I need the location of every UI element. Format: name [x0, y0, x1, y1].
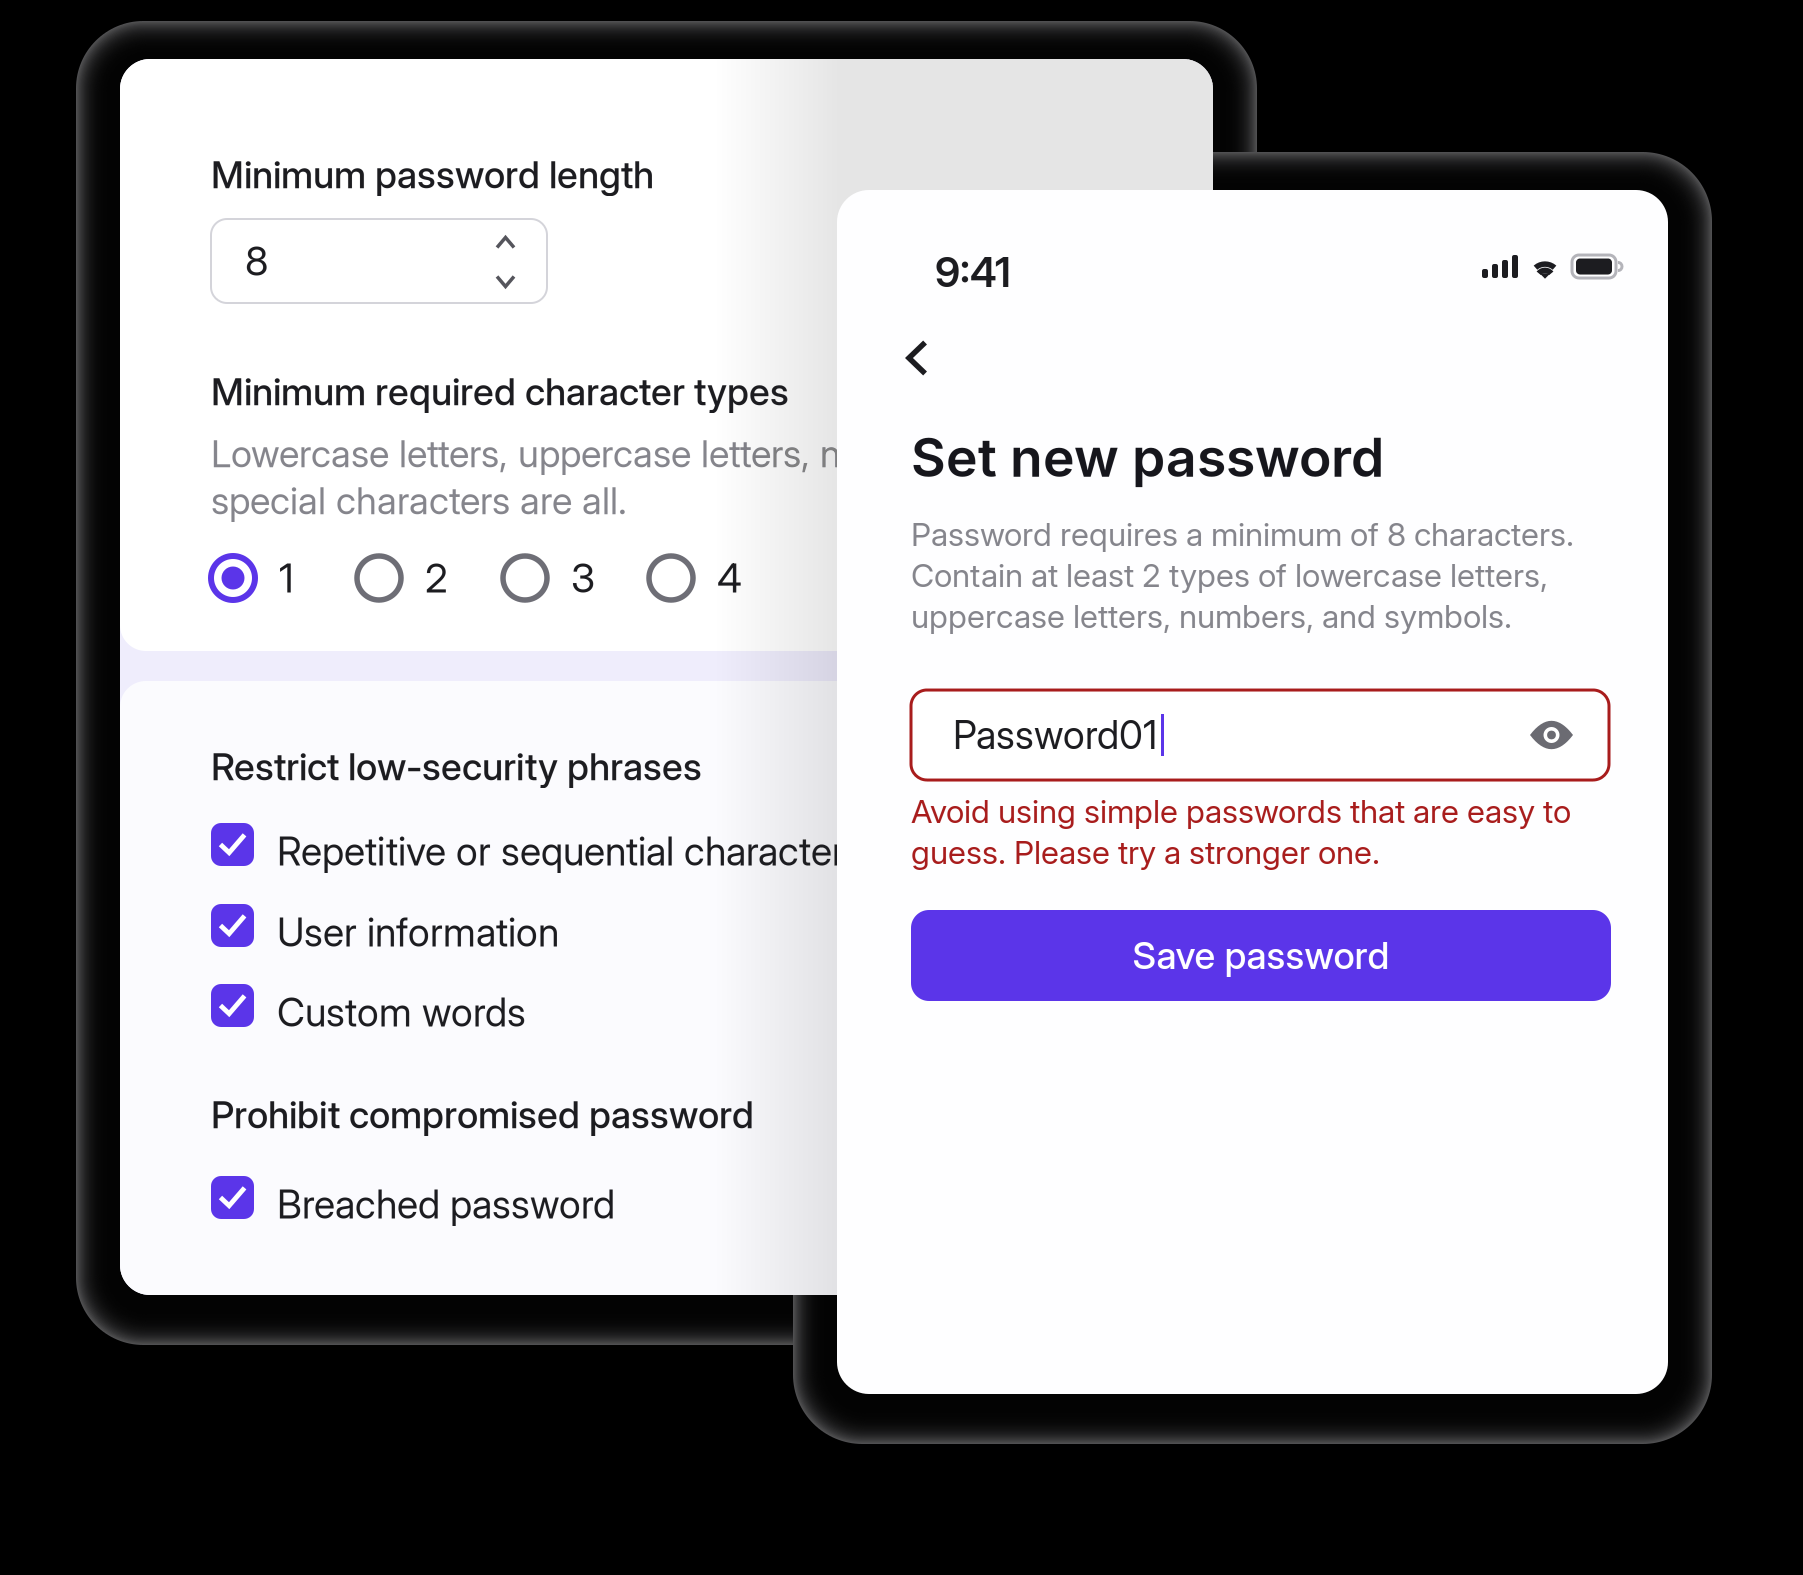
- button[interactable]: Increase minimum password length: [486, 223, 525, 262]
- staticText: Repetitive or sequential characters: [277, 828, 864, 875]
- staticText: uppercase letters, numbers, and symbols.: [911, 597, 1512, 636]
- staticText: 1: [279, 554, 294, 602]
- staticText: special characters are all.: [211, 478, 627, 523]
- button[interactable]: Show password: [1530, 722, 1609, 748]
- staticText: guess. Please try a stronger one.: [911, 833, 1380, 872]
- button[interactable]: Custom words: [211, 984, 526, 1028]
- staticText: Prohibit compromised password: [211, 1092, 754, 1137]
- staticText: 4: [717, 554, 742, 602]
- staticText: Contain at least 2 types of lowercase le…: [911, 556, 1548, 595]
- button[interactable]: 1: [211, 556, 357, 600]
- staticText: Breached password: [277, 1181, 615, 1228]
- button[interactable]: Save password: [911, 910, 1611, 1001]
- button[interactable]: Back: [877, 318, 957, 398]
- staticText: 3: [571, 554, 595, 602]
- button[interactable]: 2: [357, 556, 503, 600]
- staticText: 9:41: [935, 247, 1011, 297]
- staticText: Minimum password length: [211, 152, 654, 197]
- staticText: Minimum required character types: [211, 369, 789, 414]
- staticText: Password01: [953, 712, 1157, 758]
- staticText: Password requires a minimum of 8 charact…: [911, 515, 1574, 554]
- staticText: Set new password: [911, 425, 1384, 489]
- staticText: Custom words: [277, 989, 526, 1036]
- staticText: User information: [277, 909, 559, 956]
- button[interactable]: Repetitive or sequential characters: [211, 823, 864, 867]
- button[interactable]: Decrease minimum password length: [486, 262, 525, 301]
- button[interactable]: User information: [211, 904, 559, 948]
- staticText: Save password: [1132, 933, 1389, 978]
- staticText: Avoid using simple passwords that are ea…: [911, 792, 1571, 831]
- button[interactable]: 3: [503, 556, 649, 600]
- staticText: 8: [245, 237, 268, 285]
- button[interactable]: Breached password: [211, 1176, 615, 1220]
- staticText: Lowercase letters, uppercase letters, nu…: [211, 431, 1046, 476]
- staticText: Restrict low-security phrases: [211, 744, 702, 789]
- button[interactable]: 4: [649, 556, 795, 600]
- staticText: 2: [425, 554, 448, 602]
